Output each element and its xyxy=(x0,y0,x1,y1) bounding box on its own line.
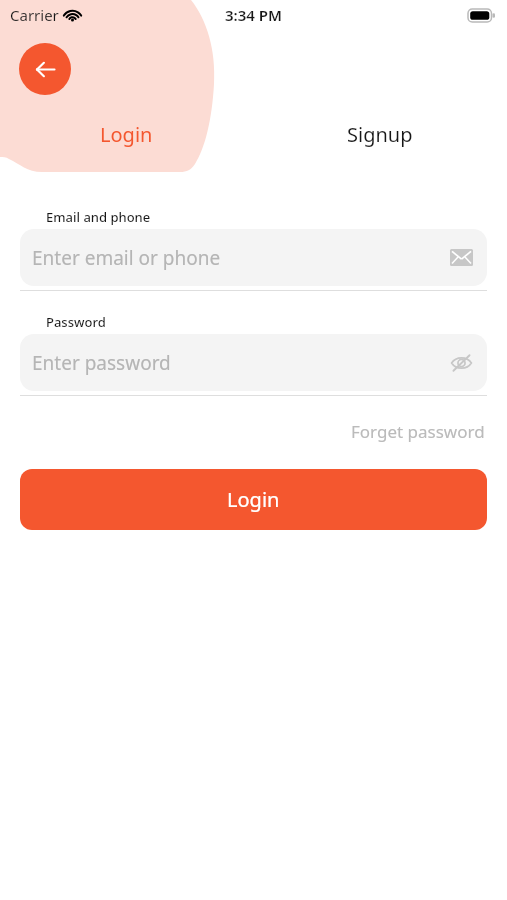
staticText: Password xyxy=(46,313,106,331)
other: Email xyxy=(450,249,473,266)
other: Show password xyxy=(450,354,473,372)
button[interactable]: Signup xyxy=(253,112,507,156)
staticText: Login xyxy=(100,121,153,148)
staticText: 3:34 PM xyxy=(225,5,282,25)
button[interactable]: Enter password xyxy=(20,334,487,391)
button[interactable]: Login xyxy=(20,469,487,530)
button[interactable]: Forget password xyxy=(349,416,487,447)
staticText: Signup xyxy=(347,121,413,148)
staticText: Enter email or phone xyxy=(32,245,221,271)
staticText: Enter password xyxy=(32,350,171,376)
staticText: Carrier xyxy=(10,5,59,25)
button[interactable]: Enter email or phone xyxy=(20,229,487,286)
staticText: Forget password xyxy=(351,420,485,443)
button[interactable]: Back xyxy=(19,43,71,95)
staticText: Login xyxy=(227,486,280,513)
button[interactable]: Login xyxy=(0,112,253,156)
staticText: Email and phone xyxy=(46,208,151,226)
